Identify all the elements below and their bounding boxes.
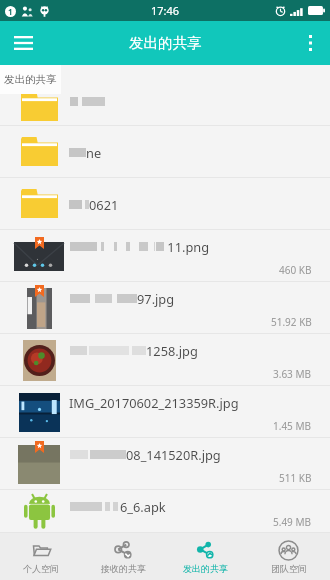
staticText: 08_141520R.jpg xyxy=(126,446,221,463)
staticText: 11.png xyxy=(164,238,210,255)
staticText: 接收的共享 xyxy=(101,563,146,574)
button[interactable]: 发出的共享 xyxy=(0,65,61,94)
button[interactable]: 发出的共享 xyxy=(164,533,247,580)
staticText: 发出的共享 xyxy=(183,563,228,574)
button[interactable]: 发出的共享 xyxy=(0,65,330,126)
staticText: 6_6.apk xyxy=(120,498,166,515)
staticText: 17:46 xyxy=(151,3,180,18)
staticText: 51.92 KB xyxy=(271,315,312,329)
staticText: 1258.jpg xyxy=(146,342,198,359)
button[interactable]: ne xyxy=(0,126,330,178)
staticText: ne xyxy=(86,144,102,161)
staticText: 发出的共享 xyxy=(4,73,57,86)
staticText: 511 KB xyxy=(279,471,312,485)
staticText: 97.jpg xyxy=(137,290,175,307)
staticText: 发出的共享 xyxy=(129,34,202,52)
staticText: IMG_20170602_213359R.jpg xyxy=(69,394,239,411)
button[interactable]: IMG_20170602_213359R.jpg xyxy=(0,386,330,438)
staticText: 1 xyxy=(8,6,13,17)
button[interactable]: Navigation menu xyxy=(0,21,46,65)
staticText: 个人空间 xyxy=(23,563,59,574)
button[interactable]: 97.jpg xyxy=(0,282,330,334)
staticText: 1.45 MB xyxy=(273,419,312,433)
button[interactable]: More options xyxy=(290,21,330,65)
staticText: 460 KB xyxy=(279,263,312,277)
button[interactable]: 团队空间 xyxy=(247,533,330,580)
button[interactable]: 接收的共享 xyxy=(82,533,164,580)
button[interactable]: 6_6.apk xyxy=(0,490,330,533)
button[interactable]: 08_141520R.jpg xyxy=(0,438,330,490)
staticText: 团队空间 xyxy=(271,563,307,574)
button[interactable]: 0621 xyxy=(0,178,330,230)
staticText: 3.63 MB xyxy=(273,367,312,381)
button[interactable]: 个人空间 xyxy=(0,533,82,580)
staticText: 0621 xyxy=(89,196,119,213)
button[interactable]: 1258.jpg xyxy=(0,334,330,386)
staticText: 5.49 MB xyxy=(273,515,312,529)
button[interactable]: 11.png xyxy=(0,230,330,282)
